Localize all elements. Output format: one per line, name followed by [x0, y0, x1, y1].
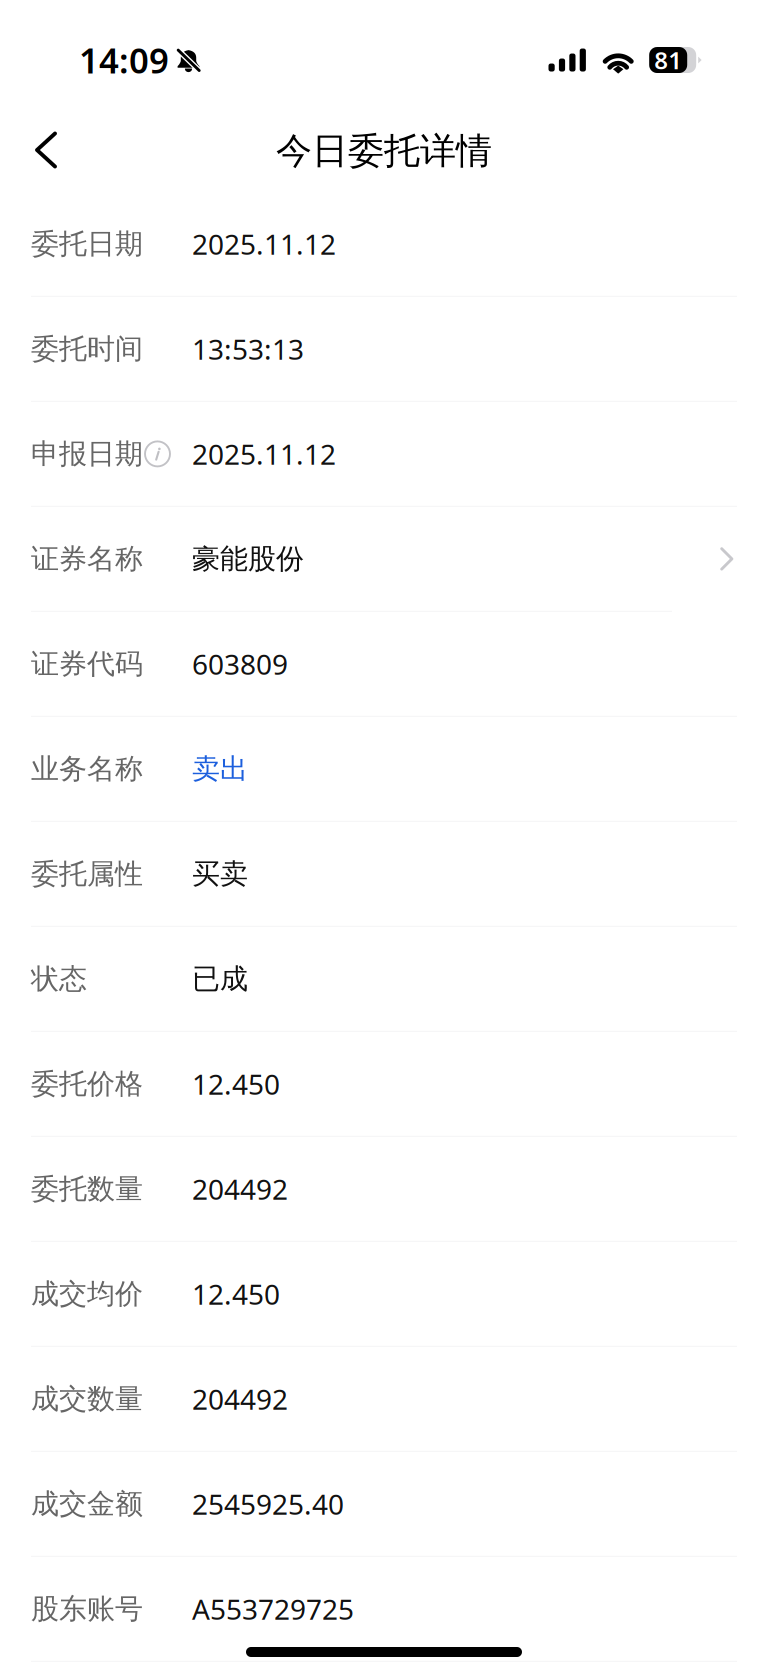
staticText: 业务名称	[31, 752, 143, 786]
staticText: 603809	[192, 645, 288, 682]
staticText: 13:53:13	[192, 330, 304, 367]
staticText: 证券名称	[31, 542, 143, 576]
staticText: 已成	[192, 962, 248, 996]
button[interactable]: 返回	[0, 107, 92, 193]
staticText: 委托价格	[31, 1067, 143, 1101]
button[interactable]: 业务名称	[0, 717, 768, 822]
staticText: 2025.11.12	[192, 435, 336, 472]
staticText: 股东账号	[31, 1592, 143, 1626]
staticText: 成交金额	[31, 1487, 143, 1521]
staticText: 申报日期	[31, 437, 143, 471]
staticText: A553729725	[192, 1590, 354, 1627]
staticText: 2025.11.12	[192, 225, 336, 262]
staticText: 委托时间	[31, 332, 143, 366]
staticText: 14:09	[79, 37, 169, 83]
staticText: 81	[654, 44, 682, 76]
staticText: 12.450	[192, 1275, 280, 1312]
staticText: 204492	[192, 1170, 288, 1207]
button[interactable]: 证券名称	[0, 507, 768, 612]
staticText: 卖出	[192, 752, 248, 786]
staticText: 2545925.40	[192, 1485, 344, 1522]
staticText: 委托数量	[31, 1172, 143, 1206]
staticText: 204492	[192, 1380, 288, 1417]
staticText: 成交数量	[31, 1382, 143, 1416]
staticText: 委托日期	[31, 227, 143, 261]
staticText: 买卖	[192, 857, 248, 891]
staticText: 证券代码	[31, 647, 143, 681]
staticText: 豪能股份	[192, 542, 304, 576]
staticText: 委托属性	[31, 857, 143, 891]
staticText: 成交均价	[31, 1277, 143, 1311]
staticText: 状态	[31, 962, 87, 996]
staticText: 12.450	[192, 1065, 280, 1102]
staticText: 今日委托详情	[276, 129, 492, 173]
